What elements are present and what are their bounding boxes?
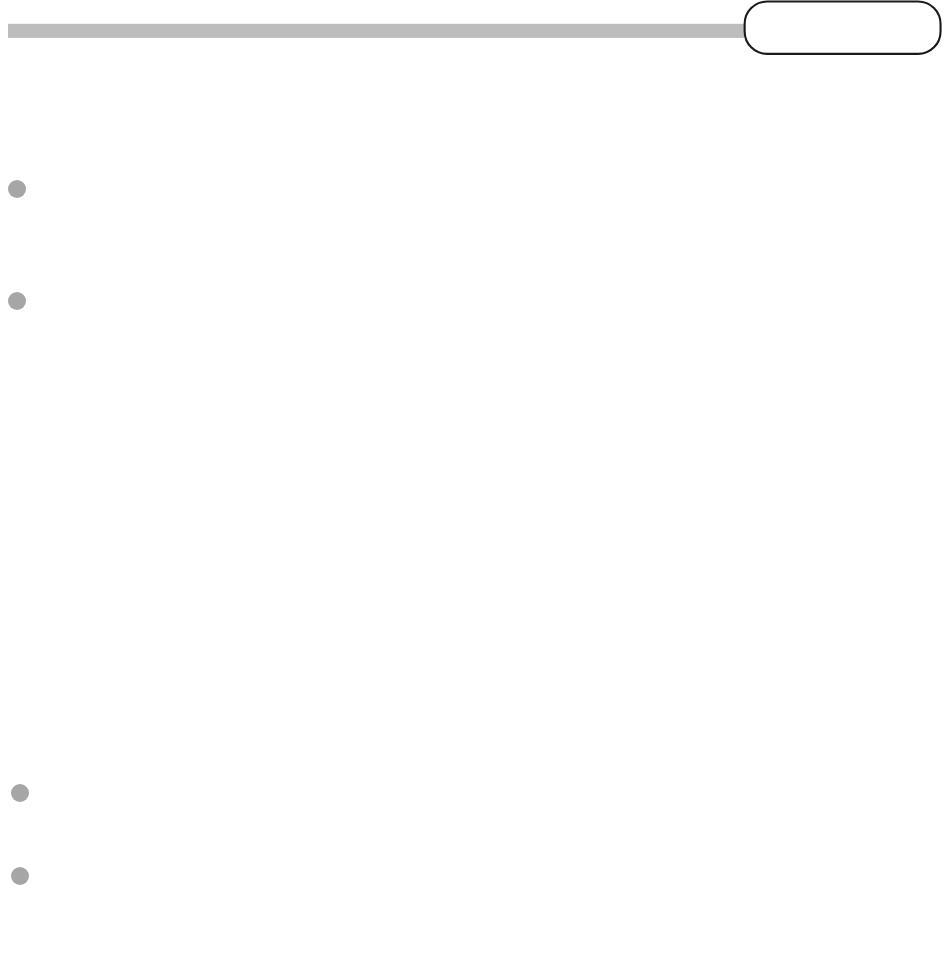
button[interactable]: List item (0, 165, 950, 213)
button[interactable]: List item (0, 852, 950, 900)
button[interactable]: List item (0, 769, 950, 817)
button[interactable]: Action (744, 0, 942, 56)
button[interactable]: List item (0, 277, 950, 325)
